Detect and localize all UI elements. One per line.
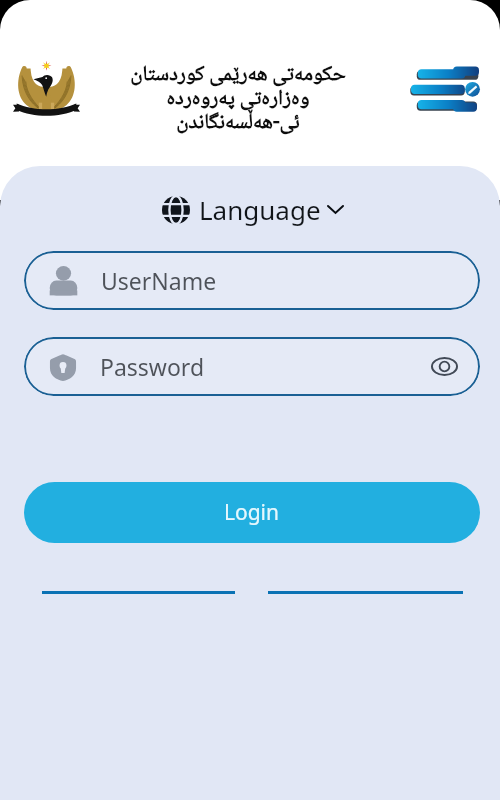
button[interactable]: Login bbox=[24, 482, 480, 543]
staticText: Login bbox=[224, 498, 280, 527]
staticText: Password bbox=[100, 351, 205, 382]
staticText: حکومەتی هەرێمی کوردستان وەزارەتی پەروەرد… bbox=[98, 58, 378, 141]
button[interactable]: Language bbox=[156, 188, 350, 231]
button[interactable]: Forgot password bbox=[42, 574, 235, 594]
button[interactable]: Register bbox=[268, 574, 463, 594]
button[interactable]: UserName bbox=[24, 251, 480, 310]
staticText: UserName bbox=[101, 265, 217, 296]
button[interactable]: Password bbox=[24, 337, 480, 396]
staticText: Language bbox=[199, 192, 321, 227]
